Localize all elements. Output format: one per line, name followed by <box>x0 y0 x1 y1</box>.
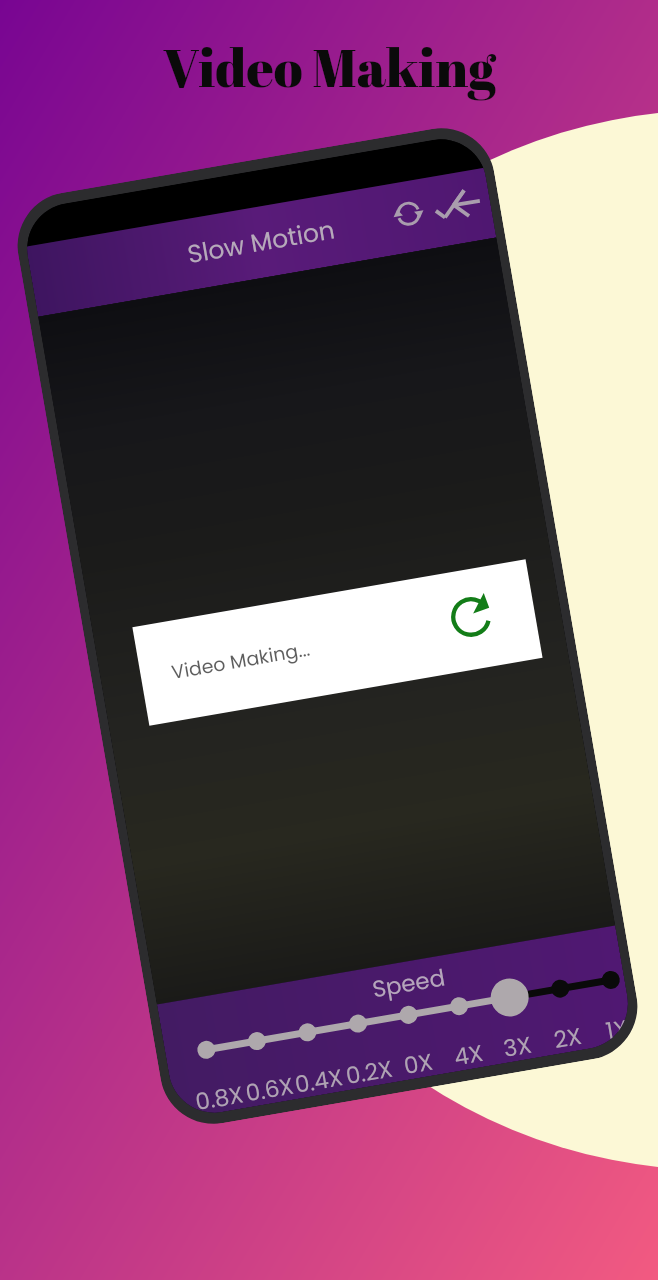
staticText: 0X <box>401 1046 435 1080</box>
button[interactable]: Video Making... <box>132 559 543 726</box>
staticText: Slow Motion <box>185 212 338 272</box>
staticText: Video Making <box>163 31 496 102</box>
staticText: 0.4X <box>292 1061 345 1099</box>
staticText: 0.8X <box>192 1078 246 1116</box>
staticText: Speed <box>370 961 448 1005</box>
staticText: 2X <box>551 1020 584 1054</box>
staticText: 4X <box>452 1037 485 1071</box>
button[interactable]: Slow Motion <box>26 168 496 317</box>
button[interactable]: Sync <box>382 188 433 239</box>
staticText: 0.2X <box>343 1053 395 1090</box>
staticText: 0.6X <box>243 1070 296 1108</box>
staticText: Video Making... <box>169 635 313 686</box>
button[interactable]: Done <box>433 188 482 221</box>
staticText: 1X <box>603 1012 630 1045</box>
staticText: 3X <box>501 1029 534 1063</box>
